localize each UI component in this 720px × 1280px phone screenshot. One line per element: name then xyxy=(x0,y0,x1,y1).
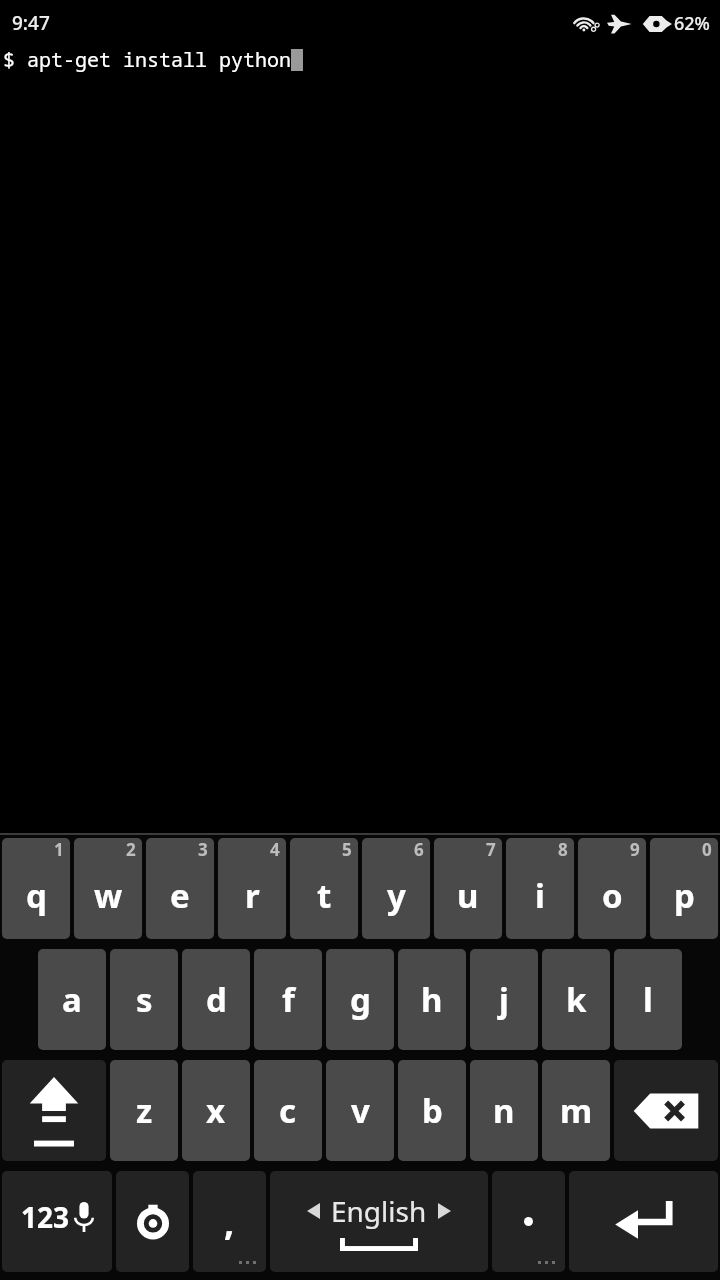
staticText: 0 xyxy=(702,838,712,861)
staticText: 2 xyxy=(126,838,136,861)
button[interactable]: j xyxy=(470,949,538,1050)
staticText: u xyxy=(457,873,479,918)
staticText: n xyxy=(493,1088,515,1133)
staticText: , xyxy=(224,1197,235,1246)
staticText: k xyxy=(566,977,587,1022)
staticText: d xyxy=(206,977,227,1022)
staticText: p xyxy=(674,873,695,918)
button[interactable]: 8 xyxy=(506,838,574,939)
button[interactable]: s xyxy=(110,949,178,1050)
button[interactable]: Space, English xyxy=(270,1171,488,1272)
staticText: g xyxy=(350,977,371,1022)
staticText: 7 xyxy=(486,838,496,861)
staticText: m xyxy=(560,1088,593,1133)
button[interactable]: n xyxy=(470,1060,538,1161)
staticText: b xyxy=(422,1088,443,1133)
staticText: j xyxy=(499,977,509,1022)
button[interactable]: Comma xyxy=(193,1171,266,1272)
button[interactable]: 1 xyxy=(2,838,70,939)
staticText: 9:47 xyxy=(12,10,50,36)
staticText: 8 xyxy=(558,838,568,861)
button[interactable]: 7 xyxy=(434,838,502,939)
staticText: 9 xyxy=(630,838,640,861)
staticText: l xyxy=(643,977,653,1022)
button[interactable]: g xyxy=(326,949,394,1050)
button[interactable]: 4 xyxy=(218,838,286,939)
button[interactable]: d xyxy=(182,949,250,1050)
staticText: 6 xyxy=(414,838,424,861)
staticText: 3 xyxy=(198,838,208,861)
button[interactable]: x xyxy=(182,1060,250,1161)
staticText: h xyxy=(421,977,443,1022)
button[interactable]: b xyxy=(398,1060,466,1161)
button[interactable]: c xyxy=(254,1060,322,1161)
staticText: o xyxy=(602,873,623,918)
button[interactable]: 0 xyxy=(650,838,718,939)
button[interactable]: Period xyxy=(492,1171,565,1272)
staticText: 62% xyxy=(674,11,710,36)
staticText: c xyxy=(279,1088,297,1133)
other: Battery xyxy=(638,14,672,34)
button[interactable]: f xyxy=(254,949,322,1050)
button[interactable]: a xyxy=(38,949,106,1050)
button[interactable]: 9 xyxy=(578,838,646,939)
staticText: English xyxy=(331,1192,427,1230)
button[interactable]: Shift xyxy=(2,1060,106,1161)
button[interactable]: 3 xyxy=(146,838,214,939)
button[interactable]: k xyxy=(542,949,610,1050)
staticText: z xyxy=(136,1088,153,1133)
staticText: $ apt-get install python xyxy=(3,46,291,73)
staticText: e xyxy=(170,873,190,918)
button[interactable]: h xyxy=(398,949,466,1050)
staticText: 123 xyxy=(21,1198,70,1236)
staticText: s xyxy=(136,977,153,1022)
button[interactable]: z xyxy=(110,1060,178,1161)
staticText: y xyxy=(387,873,406,918)
button[interactable]: m xyxy=(542,1060,610,1161)
button[interactable]: Keyboard settings xyxy=(116,1171,189,1272)
button[interactable]: 2 xyxy=(74,838,142,939)
button[interactable]: l xyxy=(614,949,682,1050)
staticText: 4 xyxy=(270,838,280,861)
staticText: t xyxy=(317,873,332,918)
other: Wi-Fi xyxy=(572,13,599,35)
button[interactable]: Backspace xyxy=(614,1060,718,1161)
button[interactable]: Numbers and voice input xyxy=(2,1171,112,1272)
button[interactable]: v xyxy=(326,1060,394,1161)
button[interactable]: 6 xyxy=(362,838,430,939)
staticText: a xyxy=(62,977,82,1022)
staticText: v xyxy=(351,1088,370,1133)
staticText: i xyxy=(535,873,545,918)
staticText: 5 xyxy=(342,838,352,861)
staticText: r xyxy=(245,873,260,918)
staticText: w xyxy=(94,873,123,918)
staticText: f xyxy=(282,977,295,1022)
staticText: x xyxy=(206,1088,226,1133)
button[interactable]: 5 xyxy=(290,838,358,939)
button[interactable]: Enter xyxy=(569,1171,718,1272)
staticText: 1 xyxy=(54,838,64,861)
staticText: q xyxy=(26,873,47,918)
other: Airplane mode xyxy=(607,14,632,34)
